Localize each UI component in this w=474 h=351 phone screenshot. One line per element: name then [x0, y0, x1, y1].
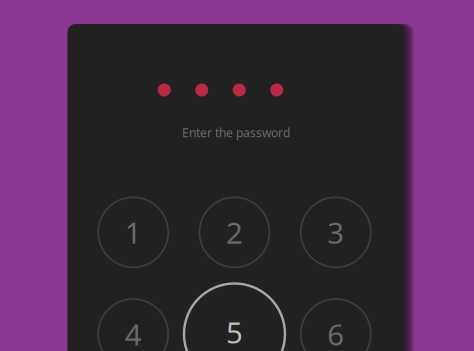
button[interactable]: 2	[199, 197, 269, 267]
button[interactable]: 3	[301, 197, 371, 267]
staticText: 6	[327, 314, 344, 351]
staticText: 2	[226, 213, 243, 252]
button[interactable]: 6	[301, 299, 371, 351]
staticText: 1	[125, 213, 142, 252]
staticText: 3	[327, 213, 344, 252]
button[interactable]: 5	[184, 283, 285, 351]
staticText: Enter the password	[182, 124, 290, 140]
staticText: 4	[125, 314, 142, 351]
button[interactable]: 4	[98, 299, 168, 351]
button[interactable]: 1	[98, 197, 168, 267]
staticText: 5	[226, 312, 243, 351]
